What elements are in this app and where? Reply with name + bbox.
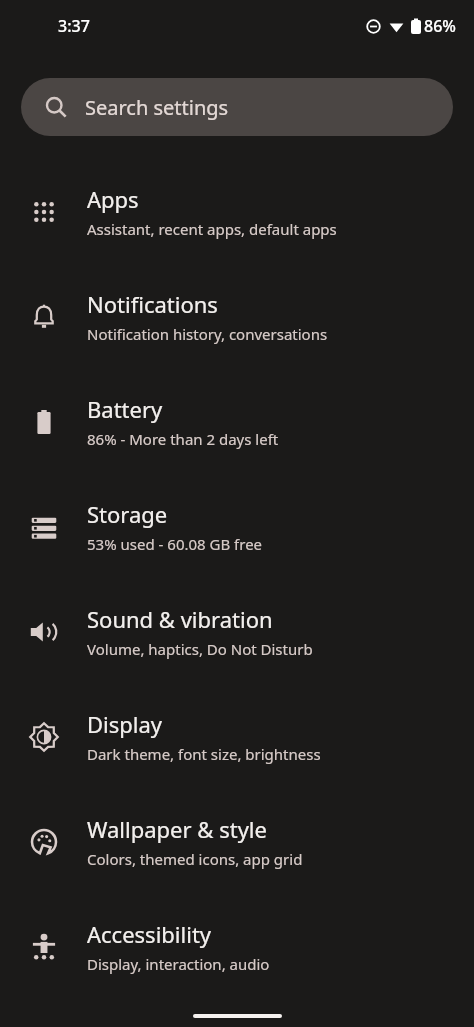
button[interactable]: Search settings bbox=[21, 78, 453, 136]
staticText: Apps bbox=[87, 184, 139, 214]
other: Apps bbox=[29, 197, 59, 227]
staticText: Wallpaper & style bbox=[87, 814, 267, 844]
other: Wallpaper and style bbox=[29, 827, 59, 857]
staticText: Colors, themed icons, app grid bbox=[87, 849, 303, 869]
staticText: Storage bbox=[87, 499, 168, 529]
button[interactable]: Storage bbox=[0, 474, 474, 579]
button[interactable]: Wallpaper and style bbox=[0, 789, 474, 894]
other: Sound and vibration bbox=[29, 617, 59, 647]
staticText: 86% - More than 2 days left bbox=[87, 429, 279, 449]
staticText: Volume, haptics, Do Not Disturb bbox=[87, 639, 313, 659]
staticText: Display, interaction, audio bbox=[87, 954, 270, 974]
staticText: Display bbox=[87, 709, 163, 739]
other: Battery bbox=[29, 407, 59, 437]
other: Accessibility bbox=[29, 932, 59, 962]
staticText: 3:37 bbox=[58, 15, 90, 37]
staticText: 86% bbox=[424, 15, 456, 37]
button[interactable]: Sound and vibration bbox=[0, 579, 474, 684]
staticText: Search settings bbox=[85, 94, 229, 121]
staticText: 53% used - 60.08 GB free bbox=[87, 534, 263, 554]
staticText: Assistant, recent apps, default apps bbox=[87, 219, 337, 239]
button[interactable]: Security bbox=[0, 999, 474, 1027]
button[interactable]: Apps bbox=[0, 159, 474, 264]
other: Storage bbox=[29, 512, 59, 542]
staticText: Notification history, conversations bbox=[87, 324, 328, 344]
staticText: Accessibility bbox=[87, 919, 212, 949]
button[interactable]: Battery bbox=[0, 369, 474, 474]
button[interactable]: Notifications bbox=[0, 264, 474, 369]
button[interactable]: Display bbox=[0, 684, 474, 789]
other: Notifications bbox=[29, 302, 59, 332]
staticText: Dark theme, font size, brightness bbox=[87, 744, 321, 764]
staticText: Battery bbox=[87, 394, 163, 424]
button[interactable]: Accessibility bbox=[0, 894, 474, 999]
other: Display bbox=[29, 722, 59, 752]
staticText: Sound & vibration bbox=[87, 604, 273, 634]
staticText: Notifications bbox=[87, 289, 218, 319]
